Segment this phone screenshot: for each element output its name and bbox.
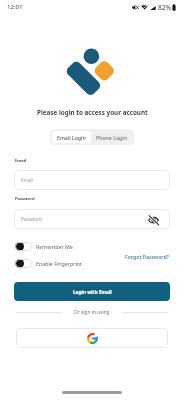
- staticText: Please login to access your account: [37, 108, 148, 117]
- button[interactable]: Remember Me: [15, 242, 73, 251]
- button[interactable]: Email: [14, 170, 170, 190]
- staticText: Enable Fingerprint: [36, 260, 82, 267]
- staticText: Phone Login: [96, 134, 127, 141]
- button[interactable]: Forgot Password?: [125, 253, 169, 260]
- staticText: Login with Email: [73, 289, 112, 295]
- button[interactable]: Show password: [148, 214, 159, 225]
- staticText: Email: [21, 177, 33, 183]
- staticText: Password: [21, 216, 42, 222]
- staticText: 12:01: [7, 3, 23, 11]
- staticText: Remember Me: [36, 243, 73, 250]
- staticText: Or sign in using: [74, 309, 110, 316]
- button[interactable]: Login with Email: [14, 282, 170, 301]
- staticText: Email: [15, 158, 27, 164]
- button[interactable]: Password: [14, 209, 170, 229]
- button[interactable]: Phone Login: [91, 131, 132, 143]
- button[interactable]: Enable Fingerprint: [15, 259, 82, 268]
- button[interactable]: Email Login: [52, 131, 91, 143]
- button[interactable]: Sign in with Google: [16, 328, 168, 348]
- staticText: Email Login: [57, 134, 86, 141]
- staticText: Password: [15, 196, 35, 202]
- staticText: Forgot Password?: [125, 253, 169, 260]
- staticText: 82%: [158, 3, 171, 12]
